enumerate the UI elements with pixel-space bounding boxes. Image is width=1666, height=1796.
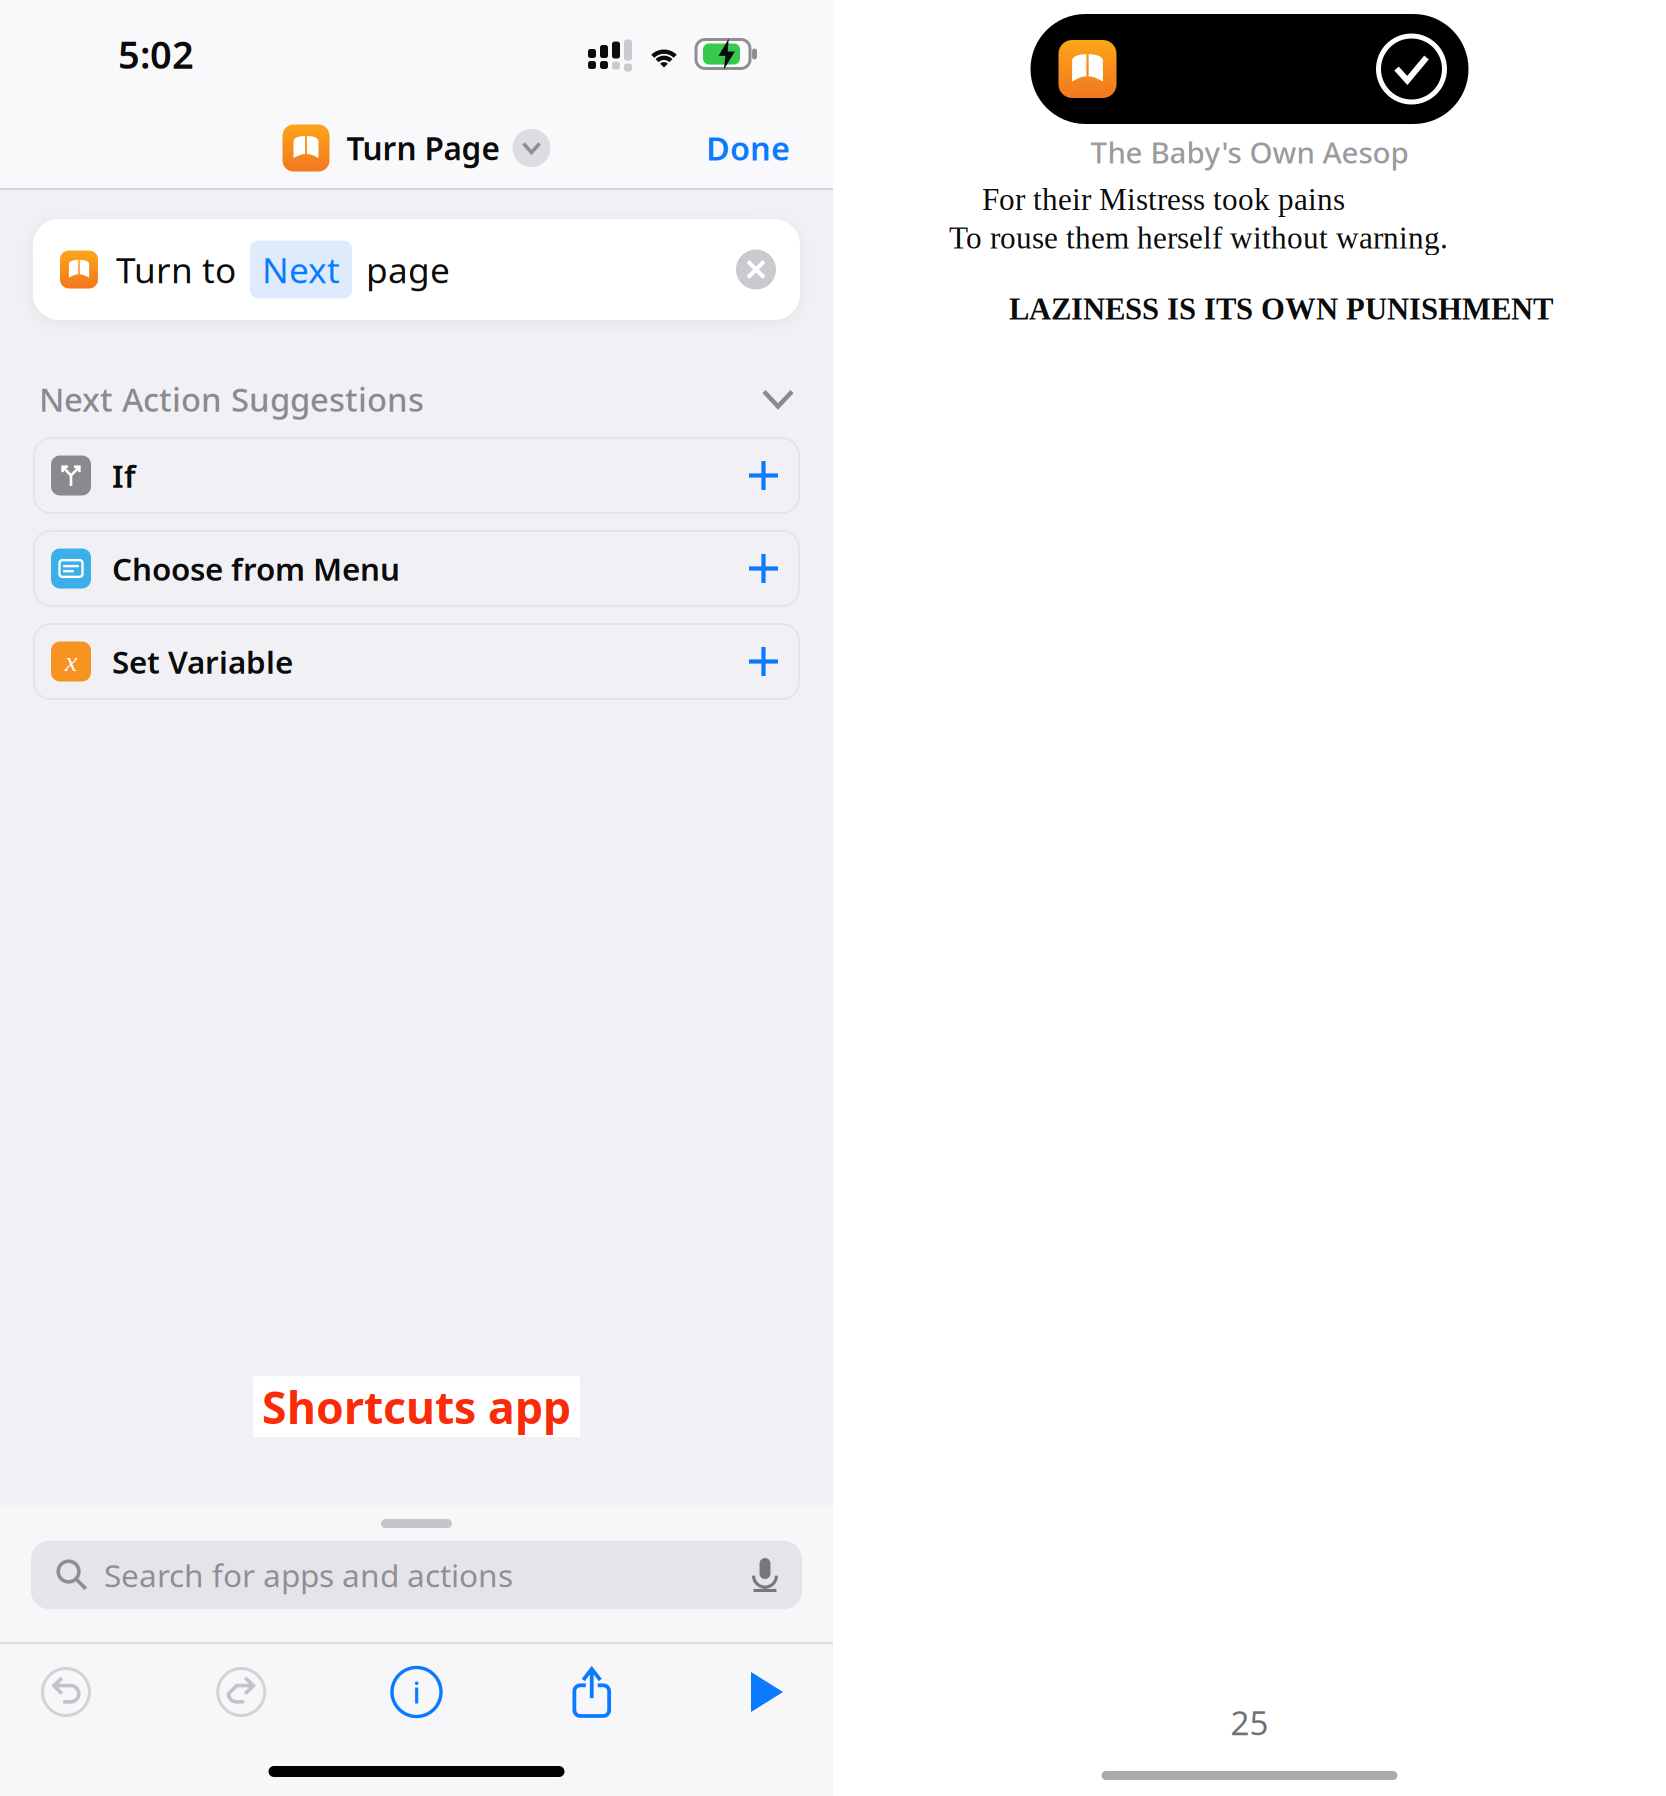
staticText: 25 bbox=[1230, 1700, 1268, 1745]
staticText: x bbox=[65, 646, 77, 677]
staticText: Shortcuts app bbox=[262, 1376, 571, 1437]
button[interactable]: Choose from Menu bbox=[34, 531, 799, 606]
button[interactable]: x bbox=[34, 624, 799, 699]
staticText: If bbox=[112, 454, 136, 497]
staticText: 5:02 bbox=[118, 28, 194, 80]
staticText: Turn to bbox=[116, 245, 236, 293]
staticText: The Baby's Own Aesop bbox=[1090, 132, 1408, 172]
staticText: To rouse them herself without warning. bbox=[949, 221, 1448, 255]
button[interactable]: Undo bbox=[20, 1646, 112, 1738]
button[interactable]: Next Action Suggestions bbox=[0, 360, 833, 438]
staticText: LAZINESS IS ITS OWN PUNISHMENT bbox=[1009, 292, 1553, 326]
staticText: Search for apps and actions bbox=[104, 1553, 513, 1596]
staticText: Turn Page bbox=[346, 127, 499, 169]
staticText: For their Mistress took pains bbox=[982, 182, 1345, 217]
button[interactable]: Done bbox=[698, 114, 798, 182]
staticText: Next bbox=[262, 245, 340, 293]
button[interactable]: Turn to bbox=[33, 219, 800, 320]
staticText: Next Action Suggestions bbox=[39, 377, 424, 421]
button[interactable]: Turn Page bbox=[282, 124, 550, 171]
staticText: Choose from Menu bbox=[112, 547, 400, 590]
button[interactable]: Redo bbox=[195, 1646, 287, 1738]
staticText: page bbox=[366, 245, 450, 293]
button[interactable]: Run shortcut bbox=[721, 1646, 813, 1738]
button[interactable]: If bbox=[34, 438, 799, 513]
button[interactable]: Details bbox=[370, 1646, 462, 1738]
staticText: Set Variable bbox=[112, 640, 293, 683]
button[interactable]: Share bbox=[546, 1646, 638, 1738]
staticText: Done bbox=[706, 126, 790, 170]
staticText: i bbox=[412, 1672, 420, 1712]
